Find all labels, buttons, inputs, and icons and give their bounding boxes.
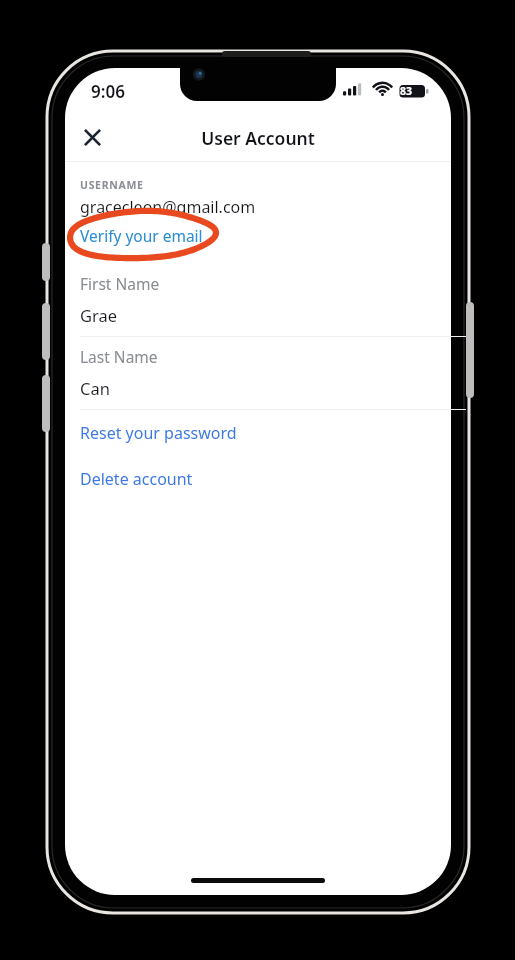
button[interactable]: Last Name bbox=[65, 339, 451, 409]
staticText: Can bbox=[80, 377, 110, 399]
staticText: Reset your password bbox=[80, 422, 237, 444]
staticText: 83 bbox=[400, 84, 413, 98]
staticText: Verify your email bbox=[80, 225, 203, 246]
button[interactable]: Delete account bbox=[65, 459, 451, 499]
staticText: USERNAME bbox=[80, 178, 144, 192]
staticText: User Account bbox=[201, 126, 315, 150]
staticText: Last Name bbox=[80, 346, 158, 367]
staticText: gracecleon@gmail.com bbox=[80, 196, 256, 218]
staticText: 9:06 bbox=[91, 80, 125, 103]
button[interactable]: Close bbox=[70, 115, 114, 159]
button[interactable]: Verify your email bbox=[73, 220, 208, 250]
staticText: Delete account bbox=[80, 468, 193, 490]
staticText: First Name bbox=[80, 273, 160, 294]
button[interactable]: First Name bbox=[65, 266, 451, 336]
button[interactable]: Reset your password bbox=[65, 413, 451, 453]
staticText: Grae bbox=[80, 304, 118, 326]
